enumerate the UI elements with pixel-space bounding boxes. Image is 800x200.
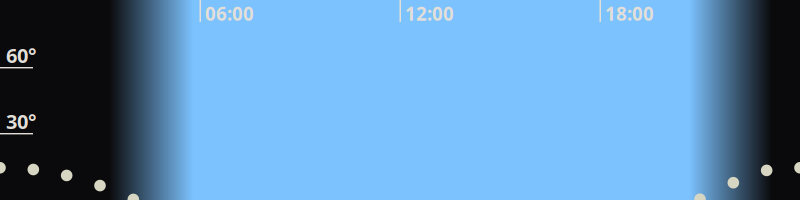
button[interactable]: Moon altitude chart bbox=[0, 0, 800, 200]
staticText: 12:00 bbox=[405, 1, 454, 26]
staticText: 60° bbox=[6, 42, 36, 69]
staticText: 18:00 bbox=[605, 1, 654, 26]
staticText: 30° bbox=[6, 108, 36, 135]
staticText: 06:00 bbox=[205, 1, 254, 26]
